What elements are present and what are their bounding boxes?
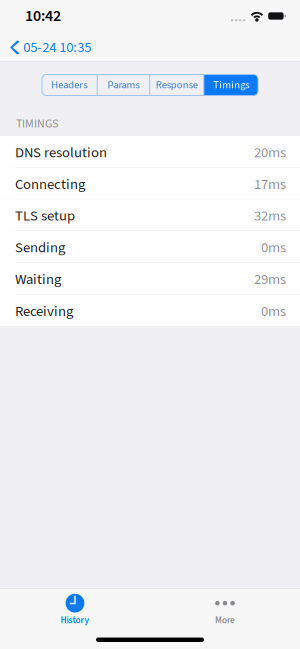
staticText: 20ms	[254, 142, 286, 163]
staticText: 29ms	[254, 269, 286, 290]
button[interactable]: Timings	[204, 74, 258, 95]
staticText: Headers	[51, 78, 87, 92]
button[interactable]: Sending	[0, 231, 300, 263]
button[interactable]: History	[0, 588, 150, 626]
button[interactable]: Receiving	[0, 294, 300, 326]
staticText: Response	[156, 78, 198, 92]
staticText: 05-24 10:35	[23, 37, 91, 58]
staticText: TLS setup	[15, 206, 75, 226]
button[interactable]: Headers	[42, 74, 97, 95]
button[interactable]: DNS resolution	[0, 136, 300, 168]
staticText: 10:42	[25, 5, 61, 27]
button[interactable]: Connecting	[0, 168, 300, 199]
staticText: DNS resolution	[15, 142, 107, 163]
button[interactable]: More	[150, 588, 300, 626]
button[interactable]: Params	[98, 74, 149, 95]
staticText: Receiving	[15, 301, 73, 321]
button[interactable]: Waiting	[0, 263, 300, 294]
staticText: 17ms	[254, 174, 286, 194]
staticText: 32ms	[254, 206, 286, 226]
button[interactable]: Response	[150, 74, 203, 95]
staticText: Connecting	[15, 174, 85, 194]
staticText: Params	[107, 78, 139, 92]
staticText: 0ms	[261, 237, 286, 258]
staticText: 0ms	[261, 301, 286, 321]
staticText: History	[60, 614, 89, 627]
staticText: TIMINGS	[16, 115, 58, 132]
button[interactable]: 05-24 10:35	[0, 28, 101, 63]
staticText: Waiting	[15, 269, 61, 290]
staticText: Sending	[15, 237, 65, 258]
staticText: Timings	[213, 78, 249, 92]
button[interactable]: TLS setup	[0, 199, 300, 231]
staticText: More	[215, 614, 235, 627]
